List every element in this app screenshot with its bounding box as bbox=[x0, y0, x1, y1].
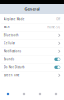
staticText: Home-5G bbox=[47, 25, 60, 29]
button[interactable]: Sounds bbox=[1, 55, 62, 63]
staticText: Airplane Mode bbox=[4, 17, 25, 21]
staticText: Do Not Disturb bbox=[4, 65, 25, 69]
staticText: Wi-Fi bbox=[4, 25, 10, 29]
button[interactable]: Screen Time bbox=[1, 71, 62, 79]
button[interactable]: Tab bbox=[32, 88, 48, 100]
button[interactable]: Notifications bbox=[1, 47, 62, 55]
button[interactable]: Do Not Disturb bbox=[1, 63, 62, 71]
staticText: Notifications bbox=[4, 49, 21, 53]
staticText: Bluetooth bbox=[4, 33, 19, 37]
button[interactable]: Tab bbox=[0, 88, 16, 100]
button[interactable]: Bluetooth bbox=[1, 31, 62, 39]
staticText: General bbox=[24, 6, 39, 12]
staticText: Off bbox=[56, 17, 60, 21]
button[interactable]: Tab bbox=[16, 88, 32, 100]
staticText: Cellular bbox=[4, 41, 15, 45]
button[interactable]: Airplane Mode bbox=[1, 15, 62, 23]
staticText: Screen Time bbox=[4, 73, 20, 77]
staticText: Sounds bbox=[4, 57, 14, 61]
button[interactable]: Cellular bbox=[1, 39, 62, 47]
button[interactable]: Tab bbox=[48, 88, 64, 100]
button[interactable]: Wi-Fi bbox=[1, 23, 62, 31]
